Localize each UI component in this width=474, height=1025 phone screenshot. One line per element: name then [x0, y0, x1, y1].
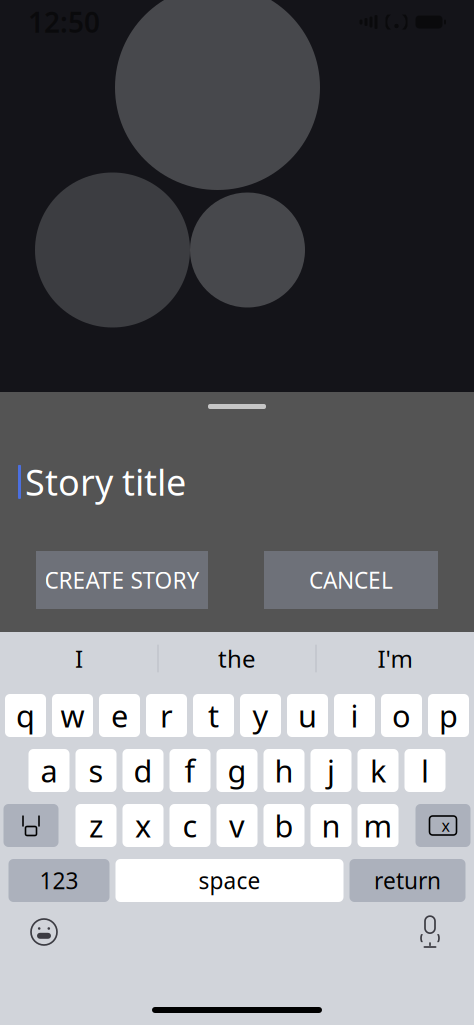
- staticText: I: [75, 643, 83, 674]
- button[interactable]: CANCEL: [264, 551, 438, 609]
- button[interactable]: p: [428, 694, 469, 737]
- staticText: w: [60, 695, 84, 736]
- staticText: CREATE STORY: [44, 565, 199, 595]
- button[interactable]: t: [193, 694, 234, 737]
- button[interactable]: l: [404, 749, 445, 792]
- staticText: r: [160, 695, 173, 736]
- button[interactable]: Shift: [3, 804, 58, 847]
- staticText: f: [184, 750, 195, 791]
- staticText: m: [363, 805, 392, 846]
- staticText: u: [298, 695, 317, 736]
- button[interactable]: a: [28, 749, 69, 792]
- button[interactable]: Delete: [415, 804, 470, 847]
- button[interactable]: f: [169, 749, 210, 792]
- button[interactable]: w: [52, 694, 93, 737]
- staticText: k: [370, 750, 386, 791]
- button[interactable]: CREATE STORY: [36, 551, 208, 609]
- staticText: p: [439, 695, 458, 736]
- staticText: v: [229, 805, 245, 846]
- button[interactable]: b: [263, 804, 304, 847]
- staticText: e: [111, 695, 128, 736]
- button[interactable]: Dictation: [408, 912, 452, 952]
- staticText: the: [218, 643, 256, 674]
- button[interactable]: y: [240, 694, 281, 737]
- staticText: y: [252, 695, 268, 736]
- button[interactable]: n: [310, 804, 351, 847]
- button[interactable]: r: [146, 694, 187, 737]
- staticText: t: [208, 695, 219, 736]
- staticText: 123: [39, 865, 78, 895]
- staticText: space: [198, 865, 260, 895]
- staticText: n: [321, 805, 340, 846]
- staticText: return: [374, 865, 441, 895]
- button[interactable]: 123: [8, 859, 109, 902]
- button[interactable]: z: [75, 804, 116, 847]
- button[interactable]: the: [158, 632, 315, 684]
- button[interactable]: u: [287, 694, 328, 737]
- staticText: I'm: [377, 643, 412, 674]
- button[interactable]: v: [216, 804, 257, 847]
- button[interactable]: i: [334, 694, 375, 737]
- staticText: i: [350, 695, 358, 736]
- staticText: q: [16, 695, 35, 736]
- staticText: 12:50: [28, 3, 100, 41]
- staticText: g: [227, 750, 246, 791]
- staticText: a: [40, 750, 57, 791]
- button[interactable]: c: [169, 804, 210, 847]
- staticText: j: [327, 750, 335, 791]
- staticText: c: [182, 805, 197, 846]
- staticText: Story title: [25, 458, 186, 506]
- button[interactable]: j: [310, 749, 351, 792]
- button[interactable]: k: [357, 749, 398, 792]
- staticText: l: [421, 750, 429, 791]
- staticText: x: [135, 805, 151, 846]
- staticText: x: [441, 815, 449, 836]
- staticText: h: [274, 750, 293, 791]
- staticText: z: [89, 805, 103, 846]
- button[interactable]: o: [381, 694, 422, 737]
- staticText: s: [88, 750, 103, 791]
- staticText: CANCEL: [309, 565, 393, 595]
- button[interactable]: space: [115, 859, 343, 902]
- button[interactable]: q: [5, 694, 46, 737]
- staticText: b: [274, 805, 293, 846]
- button[interactable]: m: [357, 804, 398, 847]
- staticText: o: [392, 695, 411, 736]
- staticText: d: [133, 750, 152, 791]
- button[interactable]: I: [0, 632, 157, 684]
- button[interactable]: d: [122, 749, 163, 792]
- button[interactable]: s: [75, 749, 116, 792]
- button[interactable]: return: [349, 859, 465, 902]
- button[interactable]: e: [99, 694, 140, 737]
- button[interactable]: g: [216, 749, 257, 792]
- button[interactable]: h: [263, 749, 304, 792]
- button[interactable]: x: [122, 804, 163, 847]
- button[interactable]: I'm: [316, 632, 473, 684]
- button[interactable]: Emoji: [22, 912, 66, 952]
